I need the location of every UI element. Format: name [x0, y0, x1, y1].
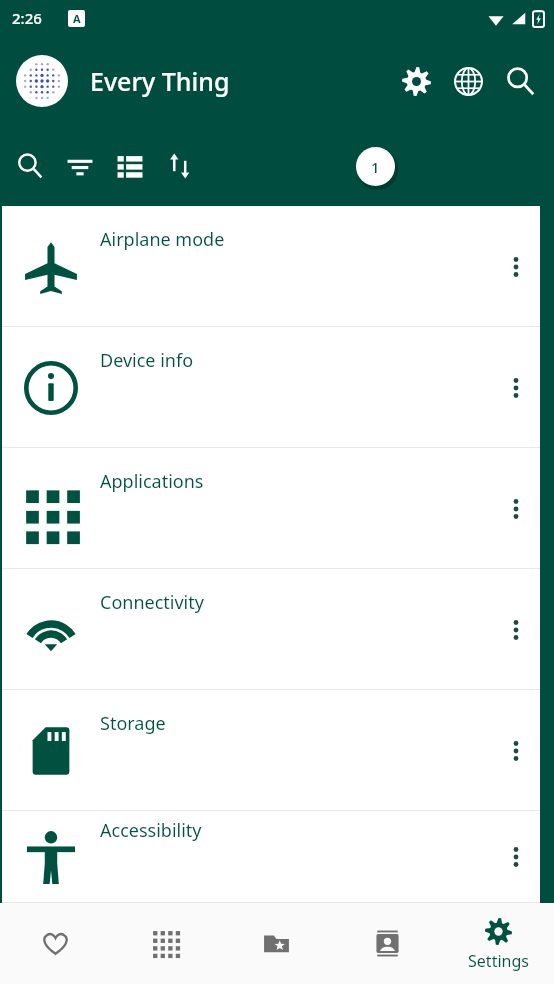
- button[interactable]: More options for Connectivity: [492, 606, 540, 654]
- button[interactable]: List view: [105, 141, 155, 191]
- button[interactable]: Connectivity: [2, 569, 540, 690]
- button[interactable]: Search: [494, 55, 546, 107]
- button[interactable]: App icon: [16, 55, 68, 107]
- staticText: Connectivity: [100, 590, 492, 615]
- button[interactable]: Applications: [2, 448, 540, 569]
- button[interactable]: Contacts: [332, 903, 443, 984]
- staticText: 2:26: [12, 8, 42, 28]
- button[interactable]: Airplane mode: [2, 206, 540, 327]
- staticText: A: [73, 11, 81, 26]
- button[interactable]: More options for Accessibility: [492, 833, 540, 881]
- staticText: Device info: [100, 348, 492, 373]
- button[interactable]: Page 1 of list: [352, 143, 398, 189]
- button[interactable]: Folders: [221, 903, 332, 984]
- button[interactable]: More options for Device info: [492, 364, 540, 412]
- staticText: Airplane mode: [100, 227, 492, 252]
- button[interactable]: Favourites: [0, 903, 110, 984]
- staticText: Settings: [468, 950, 529, 972]
- staticText: Applications: [100, 469, 492, 494]
- button[interactable]: Search: [5, 141, 55, 191]
- staticText: Accessibility: [100, 818, 492, 843]
- button[interactable]: Apps: [110, 903, 221, 984]
- button[interactable]: Language: [442, 55, 494, 107]
- button[interactable]: Settings: [443, 903, 554, 984]
- staticText: Storage: [100, 711, 492, 736]
- button[interactable]: Device info: [2, 327, 540, 448]
- staticText: 1: [371, 157, 380, 177]
- button[interactable]: Filter: [55, 141, 105, 191]
- button[interactable]: More options for Storage: [492, 727, 540, 775]
- staticText: Every Thing: [90, 64, 390, 98]
- button[interactable]: Sort: [155, 141, 205, 191]
- button[interactable]: More options for Airplane mode: [492, 243, 540, 291]
- button[interactable]: More options for Applications: [492, 485, 540, 533]
- button[interactable]: Storage: [2, 690, 540, 811]
- button[interactable]: Settings: [390, 55, 442, 107]
- button[interactable]: Accessibility: [2, 811, 540, 903]
